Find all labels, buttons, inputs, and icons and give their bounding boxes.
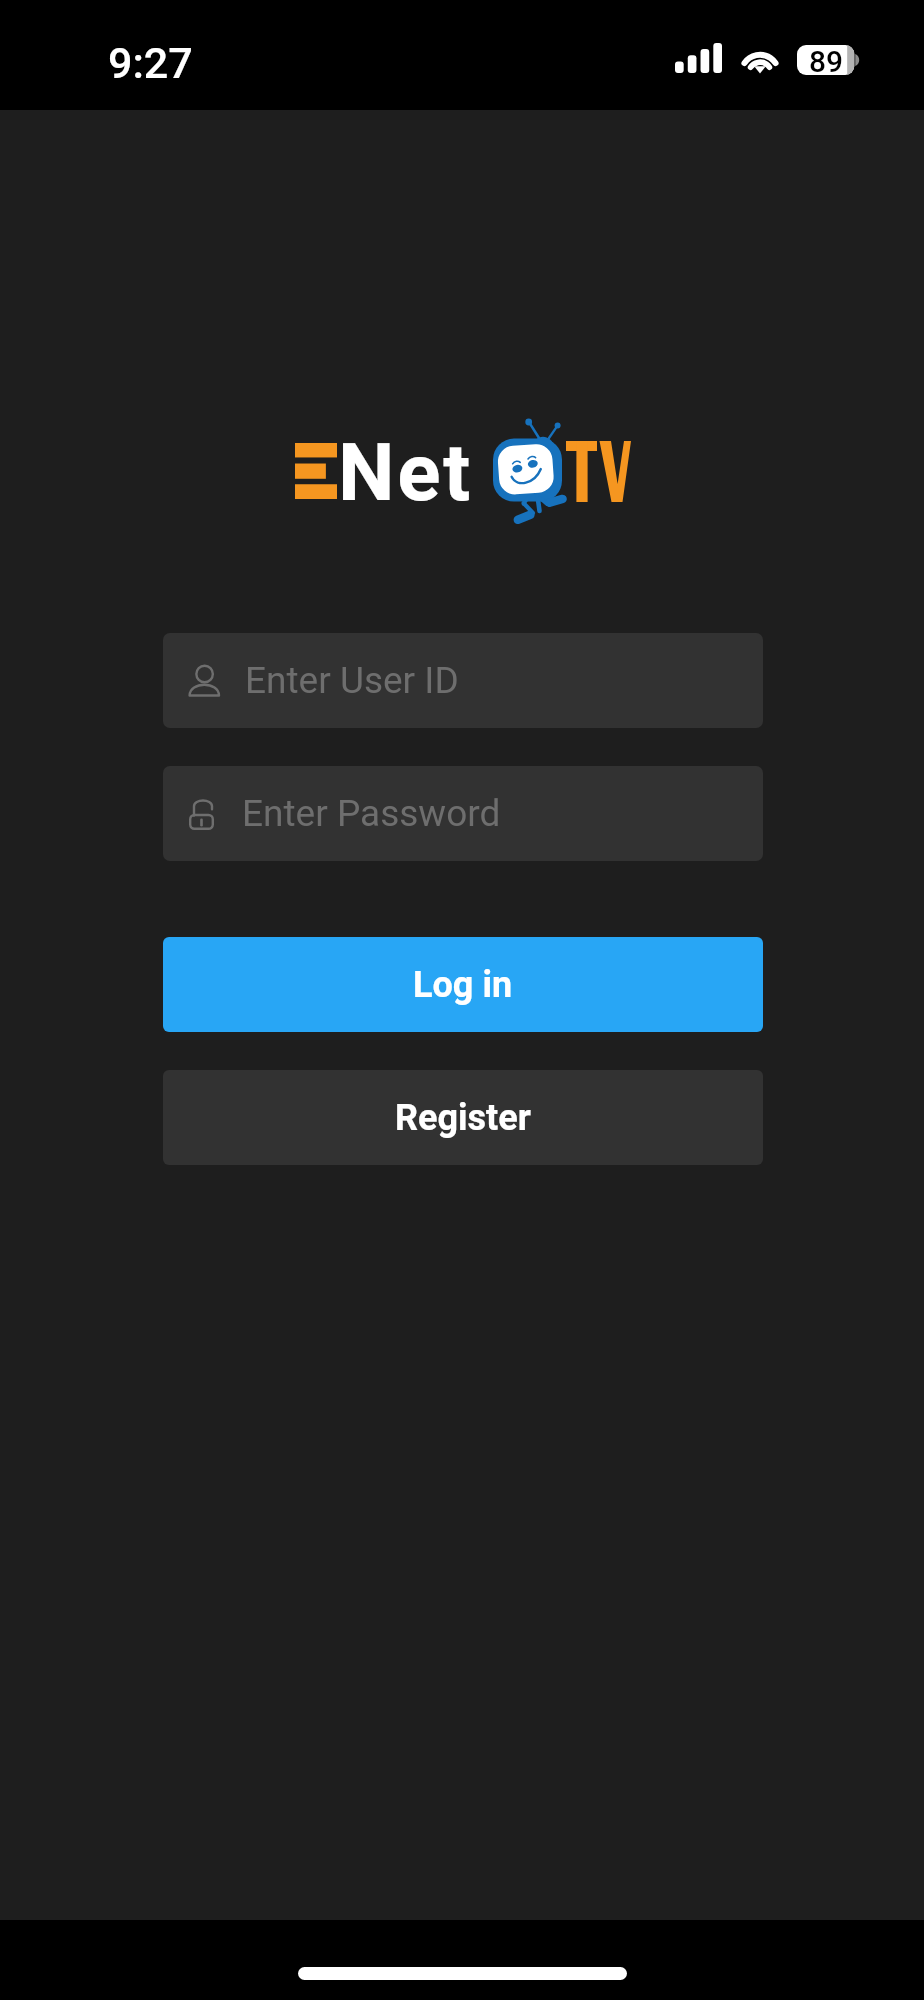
staticText: Net — [338, 426, 473, 520]
staticText: Enter Password — [242, 792, 501, 835]
button[interactable]: Register — [163, 1070, 763, 1165]
button[interactable]: Log in — [163, 937, 763, 1032]
staticText: 9:27 — [108, 38, 193, 88]
staticText: 89 — [809, 44, 844, 74]
other: ENet TV — [0, 400, 924, 540]
staticText: Enter User ID — [245, 659, 459, 702]
staticText: Log in — [413, 964, 513, 1006]
button[interactable]: Enter Password — [163, 766, 763, 861]
staticText: Register — [395, 1097, 531, 1139]
button[interactable]: Enter User ID — [163, 633, 763, 728]
